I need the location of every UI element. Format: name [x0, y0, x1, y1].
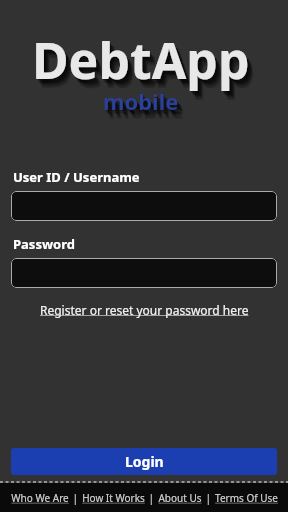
staticText: mobile — [107, 91, 183, 121]
staticText: DebtApp — [35, 30, 253, 98]
staticText: mobile — [105, 89, 181, 119]
staticText: Login — [125, 452, 164, 471]
staticText: mobile — [103, 86, 179, 116]
staticText: mobile — [104, 87, 180, 117]
button[interactable]: Register or reset your password here — [36, 300, 253, 320]
staticText: DebtApp — [37, 34, 255, 102]
staticText: mobile — [109, 95, 185, 125]
button[interactable]: Terms Of Use — [214, 488, 279, 508]
button[interactable]: About Us — [157, 488, 203, 508]
staticText: | — [70, 491, 81, 505]
staticText: | — [146, 491, 157, 505]
staticText: Password — [13, 235, 75, 253]
staticText: DebtApp — [38, 35, 256, 103]
staticText: mobile — [106, 90, 182, 120]
staticText: DebtApp — [37, 32, 255, 100]
staticText: User ID / Username — [13, 168, 140, 186]
staticText: DebtApp — [32, 26, 250, 94]
staticText: mobile — [108, 94, 184, 124]
staticText: | — [203, 491, 214, 505]
button[interactable]: Who We Are — [10, 488, 70, 508]
button[interactable] — [11, 191, 277, 221]
staticText: DebtApp — [33, 27, 251, 95]
staticText: mobile — [108, 92, 184, 122]
staticText: DebtApp — [36, 31, 254, 99]
staticText: DebtApp — [34, 29, 252, 97]
button[interactable] — [11, 258, 277, 288]
button[interactable]: Login — [11, 448, 277, 475]
button[interactable]: How It Works — [81, 488, 146, 508]
